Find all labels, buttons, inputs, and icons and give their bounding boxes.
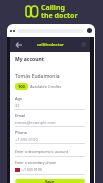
staticText: Email <box>15 113 26 118</box>
staticText: +1 555 0100 <box>22 167 42 172</box>
button[interactable]: Back <box>16 42 22 48</box>
staticText: Save <box>45 179 55 183</box>
staticText: +1 555 0100 <box>15 137 38 142</box>
staticText: callthedoctor <box>37 42 64 47</box>
staticText: Enter a decompiscmic/c account <box>15 149 68 154</box>
staticText: Tomás Eudaimonía <box>15 73 60 80</box>
staticText: Available Credits <box>30 84 62 89</box>
staticText: tomas@example.com <box>15 120 56 125</box>
staticText: Calling the doctor <box>41 3 78 20</box>
staticText: 100 <box>18 84 25 89</box>
button[interactable]: Profile <box>81 42 86 47</box>
staticText: My account <box>15 56 44 63</box>
staticText: 32 <box>15 103 20 108</box>
staticText: Enter a secondary phone <box>15 160 57 165</box>
staticText: Age <box>15 96 23 101</box>
staticText: Phone <box>15 130 28 135</box>
button[interactable]: Save <box>15 179 85 183</box>
